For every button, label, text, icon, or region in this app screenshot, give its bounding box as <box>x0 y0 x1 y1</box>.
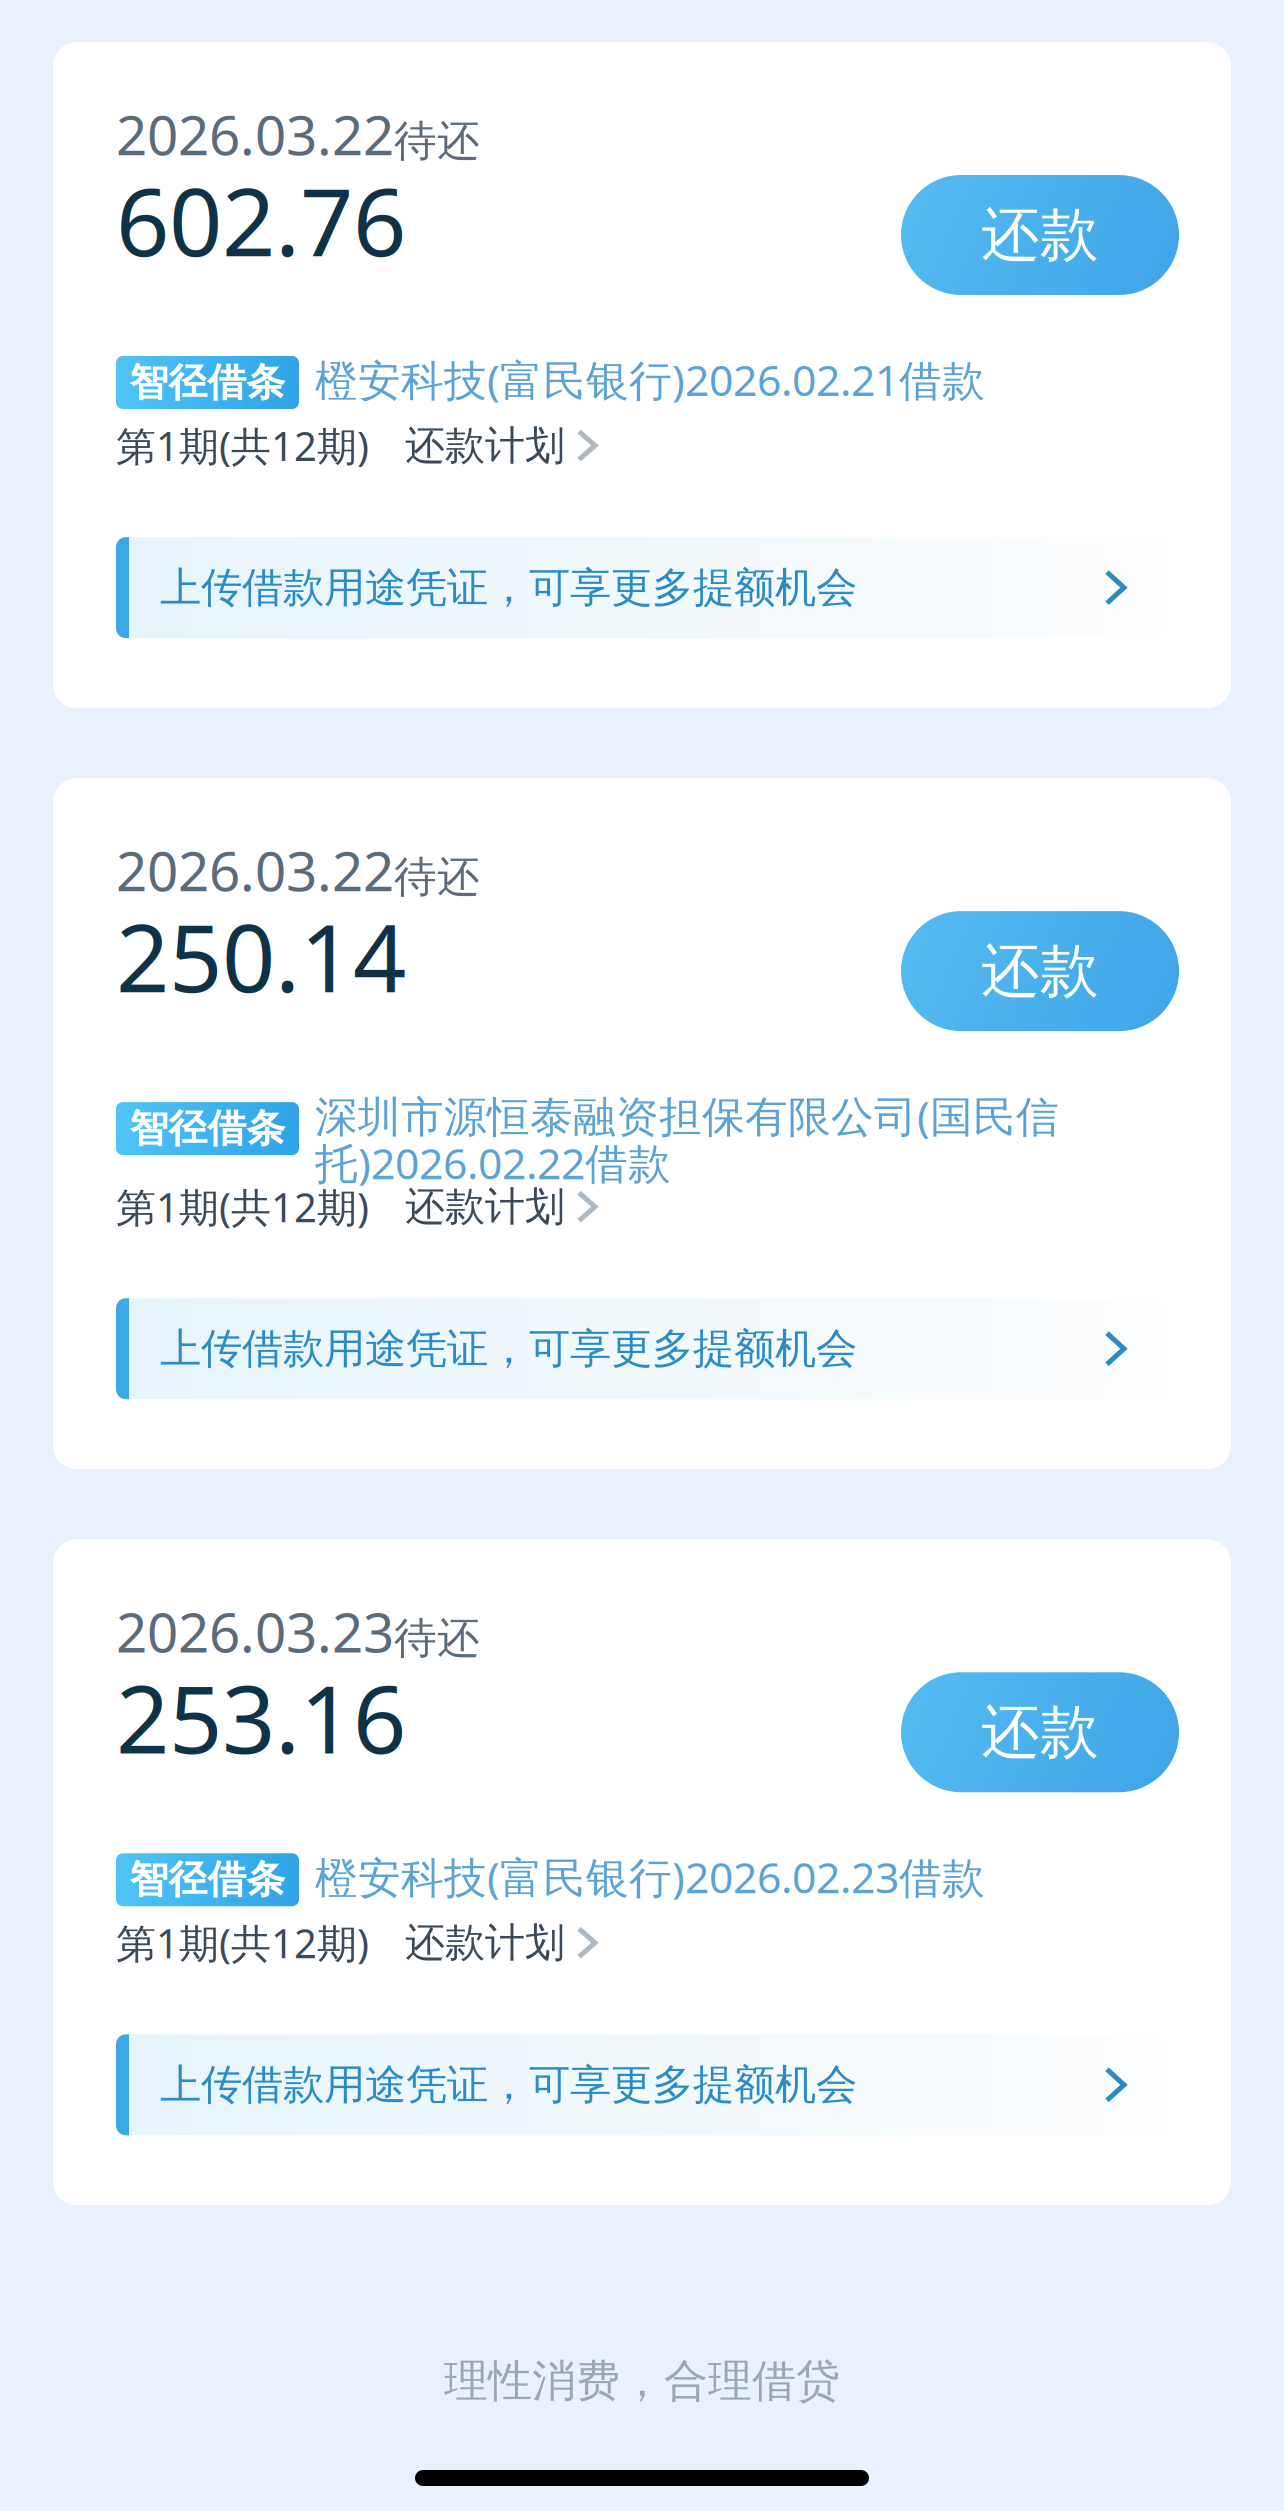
button[interactable]: 上传借款用途凭证，可享更多提额机会 <box>116 537 1166 638</box>
staticText: 第1期(共12期) <box>116 1916 369 1969</box>
staticText: 智径借条 <box>129 1105 285 1152</box>
staticText: 上传借款用途凭证，可享更多提额机会 <box>160 2059 857 2110</box>
staticText: 上传借款用途凭证，可享更多提额机会 <box>160 562 857 613</box>
staticText: 智径借条 <box>129 359 285 406</box>
staticText: 深圳市源恒泰融资担保有限公司(国民信 <box>315 1087 1059 1144</box>
button[interactable]: 上传借款用途凭证，可享更多提额机会 <box>116 2034 1166 2135</box>
staticText: 第1期(共12期) <box>116 1180 369 1233</box>
staticText: 还款 <box>981 1696 1099 1768</box>
staticText: 待还 <box>394 1612 480 1664</box>
staticText: 待还 <box>394 851 480 903</box>
staticText: 还款计划 <box>405 1918 565 1967</box>
staticText: 还款 <box>981 935 1099 1007</box>
button[interactable]: 还款 <box>901 1672 1179 1792</box>
staticText: 250.14 <box>116 894 406 1018</box>
staticText: 602.76 <box>116 158 406 282</box>
staticText: 2026.03.23 <box>116 1595 394 1667</box>
staticText: 还款计划 <box>405 421 565 470</box>
button[interactable]: 上传借款用途凭证，可享更多提额机会 <box>116 1298 1166 1399</box>
button[interactable]: 还款 <box>901 911 1179 1031</box>
button[interactable]: 还款 <box>901 175 1179 295</box>
staticText: 托)2026.02.22借款 <box>315 1134 671 1191</box>
staticText: 253.16 <box>116 1655 406 1779</box>
staticText: 理性消费，合理借贷 <box>444 2354 840 2408</box>
staticText: 待还 <box>394 115 480 167</box>
staticText: 还款计划 <box>405 1182 565 1231</box>
staticText: 2026.03.22 <box>116 98 394 170</box>
staticText: 橙安科技(富民银行)2026.02.21借款 <box>315 351 985 408</box>
staticText: 2026.03.22 <box>116 834 394 906</box>
staticText: 第1期(共12期) <box>116 419 369 472</box>
staticText: 上传借款用途凭证，可享更多提额机会 <box>160 1323 857 1374</box>
staticText: 还款 <box>981 199 1099 271</box>
staticText: 智径借条 <box>129 1856 285 1903</box>
staticText: 橙安科技(富民银行)2026.02.23借款 <box>315 1848 985 1905</box>
